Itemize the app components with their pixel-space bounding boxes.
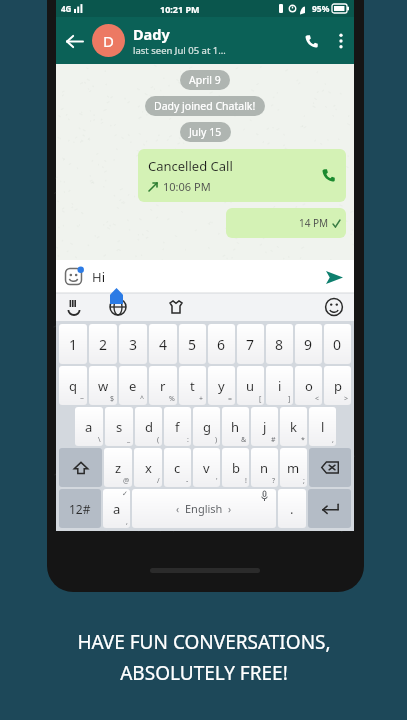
button[interactable]: Call <box>294 24 328 58</box>
button[interactable]: Emoji <box>204 272 226 294</box>
staticText: w <box>98 377 109 395</box>
button[interactable]: 7 <box>237 324 264 364</box>
button[interactable]: * <box>280 407 307 446</box>
staticText: k <box>290 418 297 436</box>
button[interactable]: Emoji <box>72 272 94 294</box>
button[interactable]: / <box>134 448 162 487</box>
staticText: 5 <box>188 335 197 354</box>
button[interactable]: Shift <box>59 448 102 487</box>
staticText: , <box>126 517 128 527</box>
button[interactable]: ~ <box>59 366 87 405</box>
staticText: ? <box>272 476 276 486</box>
button[interactable]: Back <box>56 23 92 59</box>
staticText: 10:06 PM <box>163 179 211 194</box>
staticText: y <box>218 377 225 395</box>
button[interactable]: 3 <box>119 324 147 364</box>
button[interactable]: Enter <box>308 489 351 528</box>
button[interactable]: Symbols <box>59 489 101 528</box>
button[interactable]: Emoji <box>248 272 270 294</box>
staticText: < <box>315 394 320 404</box>
button[interactable]: < <box>295 366 322 405</box>
staticText: April 9 <box>189 73 221 87</box>
button[interactable]: Theme <box>166 297 186 317</box>
button[interactable]: ) <box>193 407 220 446</box>
staticText: - <box>186 476 189 486</box>
button[interactable]: ; <box>280 448 307 487</box>
button[interactable]: Backspace <box>309 448 351 487</box>
button[interactable]: # <box>251 407 278 446</box>
button[interactable]: Language <box>108 297 128 317</box>
button[interactable]: > <box>324 366 351 405</box>
button[interactable]: ‹ <box>132 489 276 528</box>
button[interactable]: + <box>179 366 206 405</box>
button[interactable]: 6 <box>208 324 235 364</box>
button[interactable]: : <box>164 407 191 446</box>
button[interactable]: , <box>309 407 336 446</box>
button[interactable]: 1 <box>59 324 87 364</box>
button[interactable]: ] <box>266 366 293 405</box>
button[interactable]: \ <box>75 407 103 446</box>
staticText: # <box>271 435 276 445</box>
staticText: l <box>321 418 325 436</box>
button[interactable]: $ <box>89 366 117 405</box>
staticText: 14 PM <box>299 216 329 230</box>
staticText: ) <box>215 435 218 445</box>
button[interactable]: D <box>92 24 125 57</box>
staticText: > <box>344 394 349 404</box>
button[interactable]: _ <box>105 407 133 446</box>
staticText: Cancelled Call <box>148 157 233 175</box>
staticText: 8 <box>275 335 284 354</box>
button[interactable]: More options <box>328 24 354 58</box>
staticText: ( <box>157 435 160 445</box>
staticText: a <box>85 418 93 436</box>
button[interactable]: @ <box>104 448 132 487</box>
staticText: u <box>246 377 255 395</box>
button[interactable]: - <box>164 448 191 487</box>
staticText: i <box>278 377 282 395</box>
staticText: f <box>175 418 180 436</box>
button[interactable]: Emoji <box>324 297 344 317</box>
button[interactable]: Cancelled Call <box>138 149 346 202</box>
button[interactable]: ( <box>135 407 162 446</box>
button[interactable]: . <box>278 489 306 528</box>
staticText: = <box>228 394 233 404</box>
button[interactable]: 5 <box>179 324 206 364</box>
staticText: ^ <box>140 394 145 404</box>
staticText: @ <box>123 476 130 486</box>
staticText: ABSOLUTELY FREE! <box>120 660 288 686</box>
staticText: h <box>231 418 240 436</box>
staticText: b <box>232 459 240 477</box>
button[interactable]: Emoji <box>160 272 182 294</box>
button[interactable]: 9 <box>295 324 322 364</box>
staticText: t <box>190 377 195 395</box>
button[interactable]: ^ <box>119 366 147 405</box>
button[interactable]: 4 <box>149 324 177 364</box>
button[interactable]: [ <box>237 366 264 405</box>
staticText: 4 <box>159 335 168 354</box>
button[interactable]: % <box>149 366 177 405</box>
button[interactable]: = <box>208 366 235 405</box>
staticText: q <box>69 377 77 395</box>
button[interactable]: Emoji <box>116 272 138 294</box>
button[interactable]: ? <box>251 448 278 487</box>
button[interactable]: ' <box>193 448 220 487</box>
button[interactable]: Dady <box>133 24 294 57</box>
button[interactable]: 2 <box>89 324 117 364</box>
staticText: 9 <box>304 335 313 354</box>
button[interactable]: Sticker <box>64 267 83 286</box>
button[interactable]: Send <box>322 265 346 289</box>
staticText: 7 <box>246 335 255 354</box>
staticText: & <box>241 435 247 445</box>
staticText: v <box>203 459 210 477</box>
staticText: r <box>160 377 166 395</box>
staticText: _ <box>127 435 131 445</box>
button[interactable]: , <box>103 489 130 528</box>
staticText: n <box>260 459 269 477</box>
button[interactable]: Handwriting <box>66 297 86 317</box>
button[interactable]: 0 <box>324 324 351 364</box>
staticText: 4G <box>61 3 72 14</box>
button[interactable]: & <box>222 407 249 446</box>
button[interactable]: ! <box>222 448 249 487</box>
staticText: : <box>187 435 189 445</box>
button[interactable]: 8 <box>266 324 293 364</box>
